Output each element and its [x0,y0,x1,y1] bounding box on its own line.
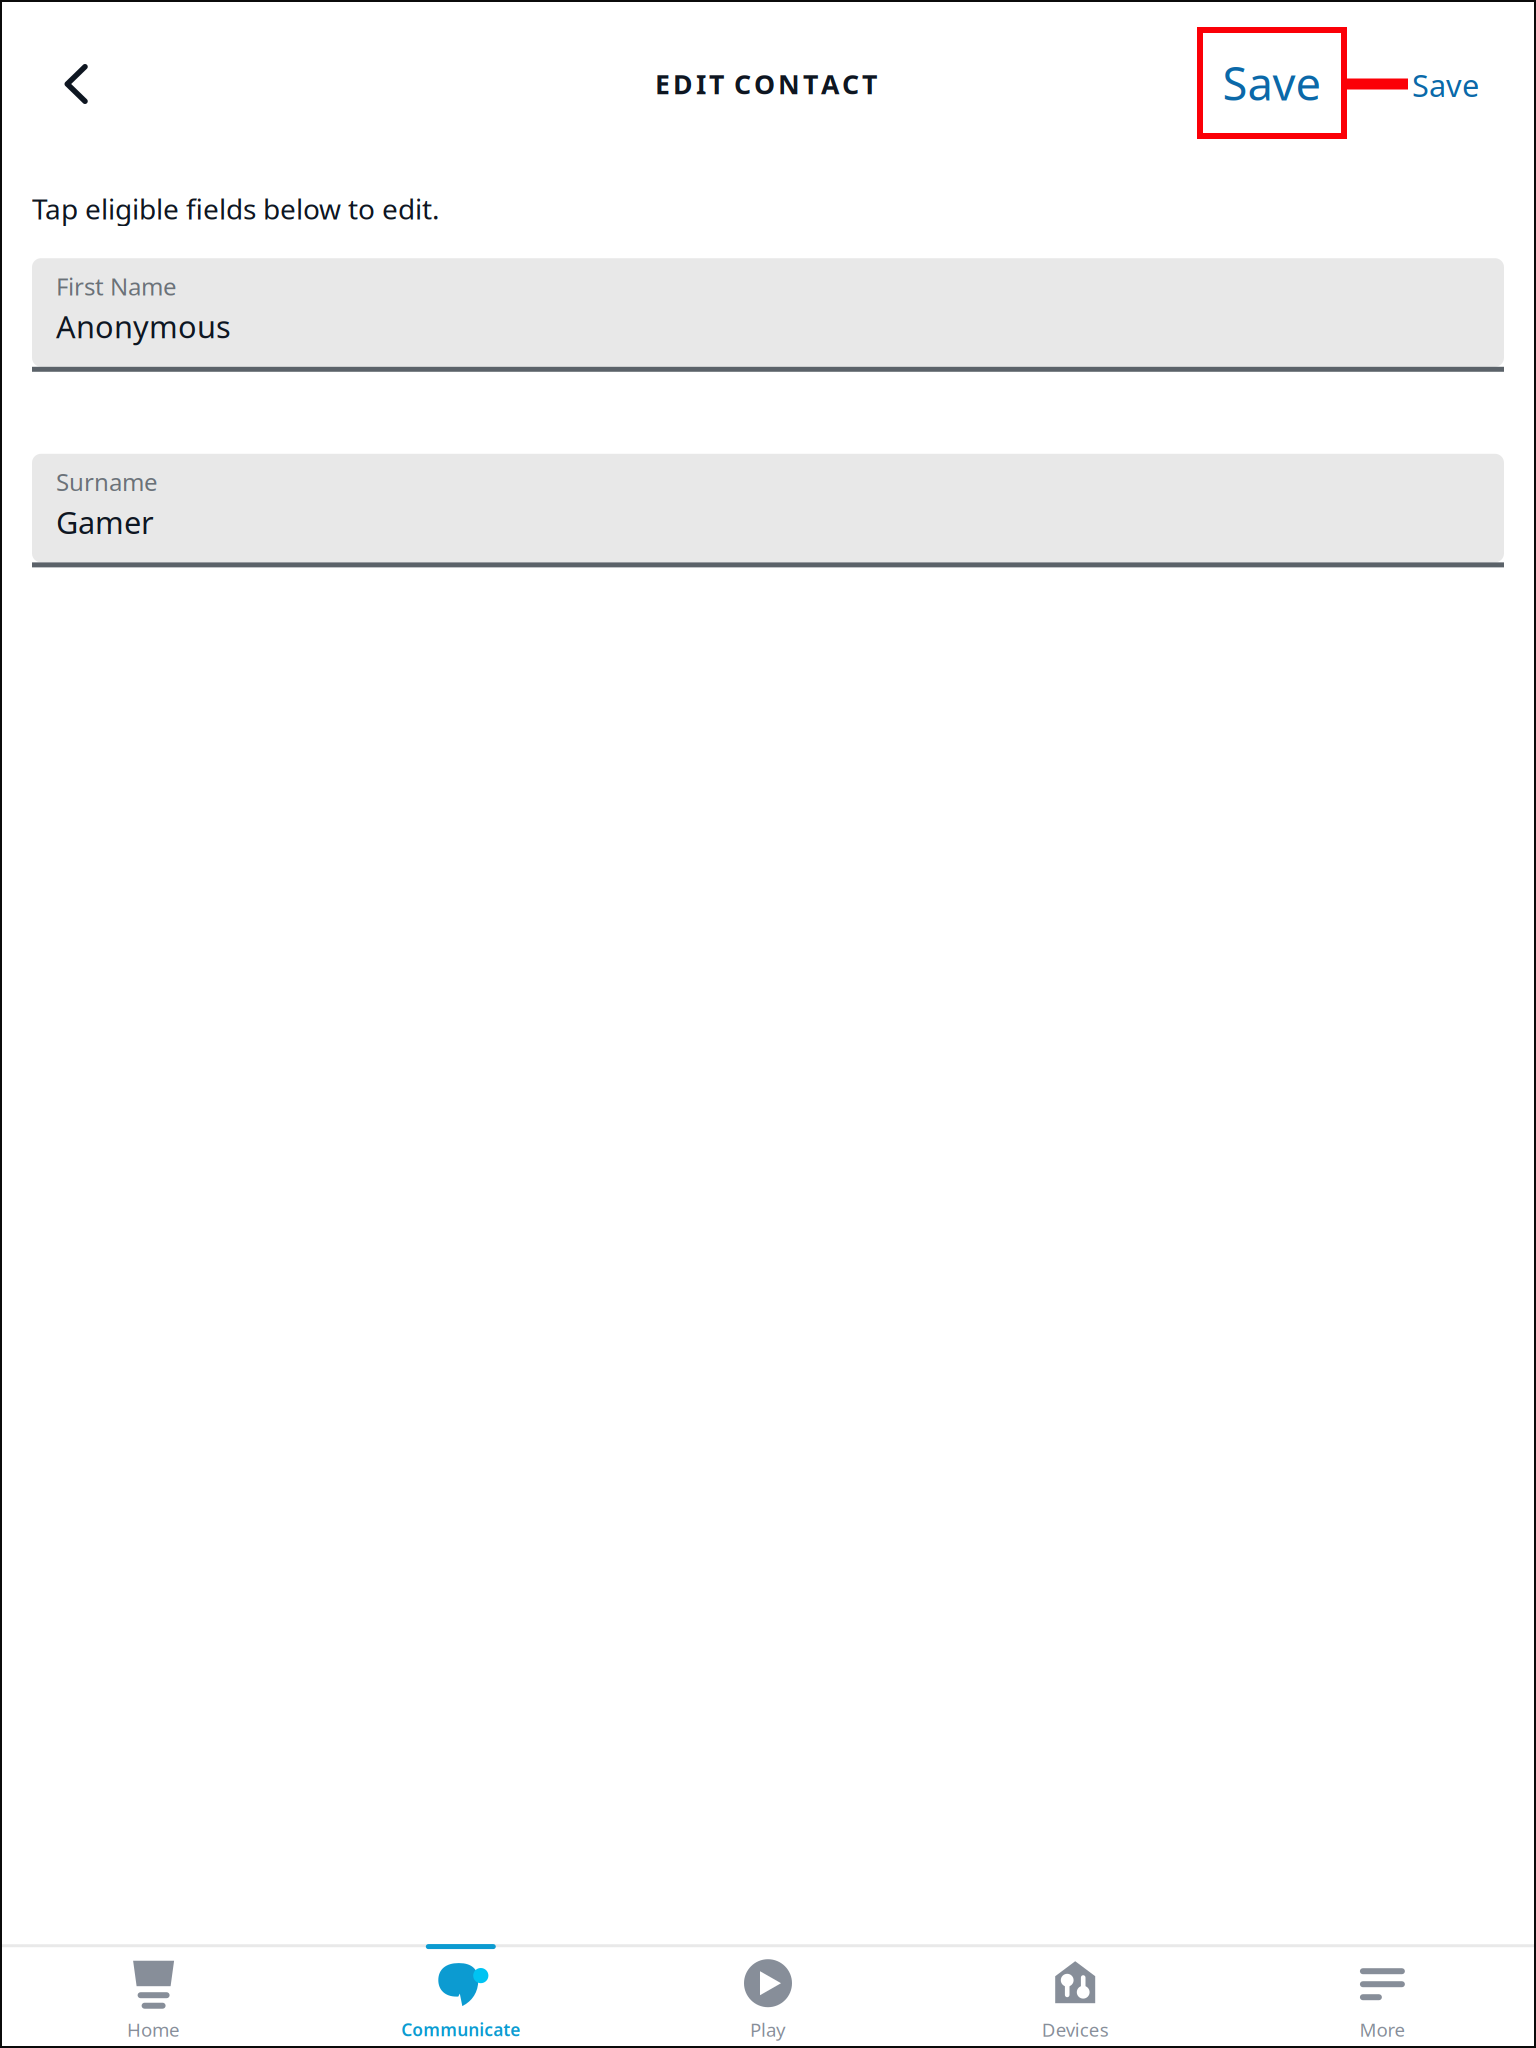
staticText: Save [1412,65,1479,105]
staticText: Save [1222,53,1321,113]
staticText: More [1359,2017,1405,2042]
staticText: First Name [56,270,177,302]
staticText: Anonymous [56,306,231,347]
staticText: E D I T C O N T A C T [655,66,877,102]
button[interactable]: Communicate [307,1948,614,2047]
button[interactable]: Home [0,1947,307,2048]
staticText: Communicate [401,2018,520,2041]
button[interactable]: Play [614,1947,922,2048]
staticText: Play [750,2017,786,2042]
button[interactable]: First Name [32,258,1504,372]
button[interactable]: More [1229,1947,1536,2048]
button[interactable]: Save [1197,27,1347,139]
staticText: Gamer [56,502,154,542]
staticText: Surname [56,466,158,498]
button[interactable]: Devices [922,1947,1229,2048]
staticText: Tap eligible fields below to edit. [32,190,440,227]
button[interactable]: Surname [32,454,1504,567]
button[interactable]: Back [28,36,124,132]
staticText: Devices [1042,2017,1109,2042]
staticText: Home [127,2017,180,2042]
